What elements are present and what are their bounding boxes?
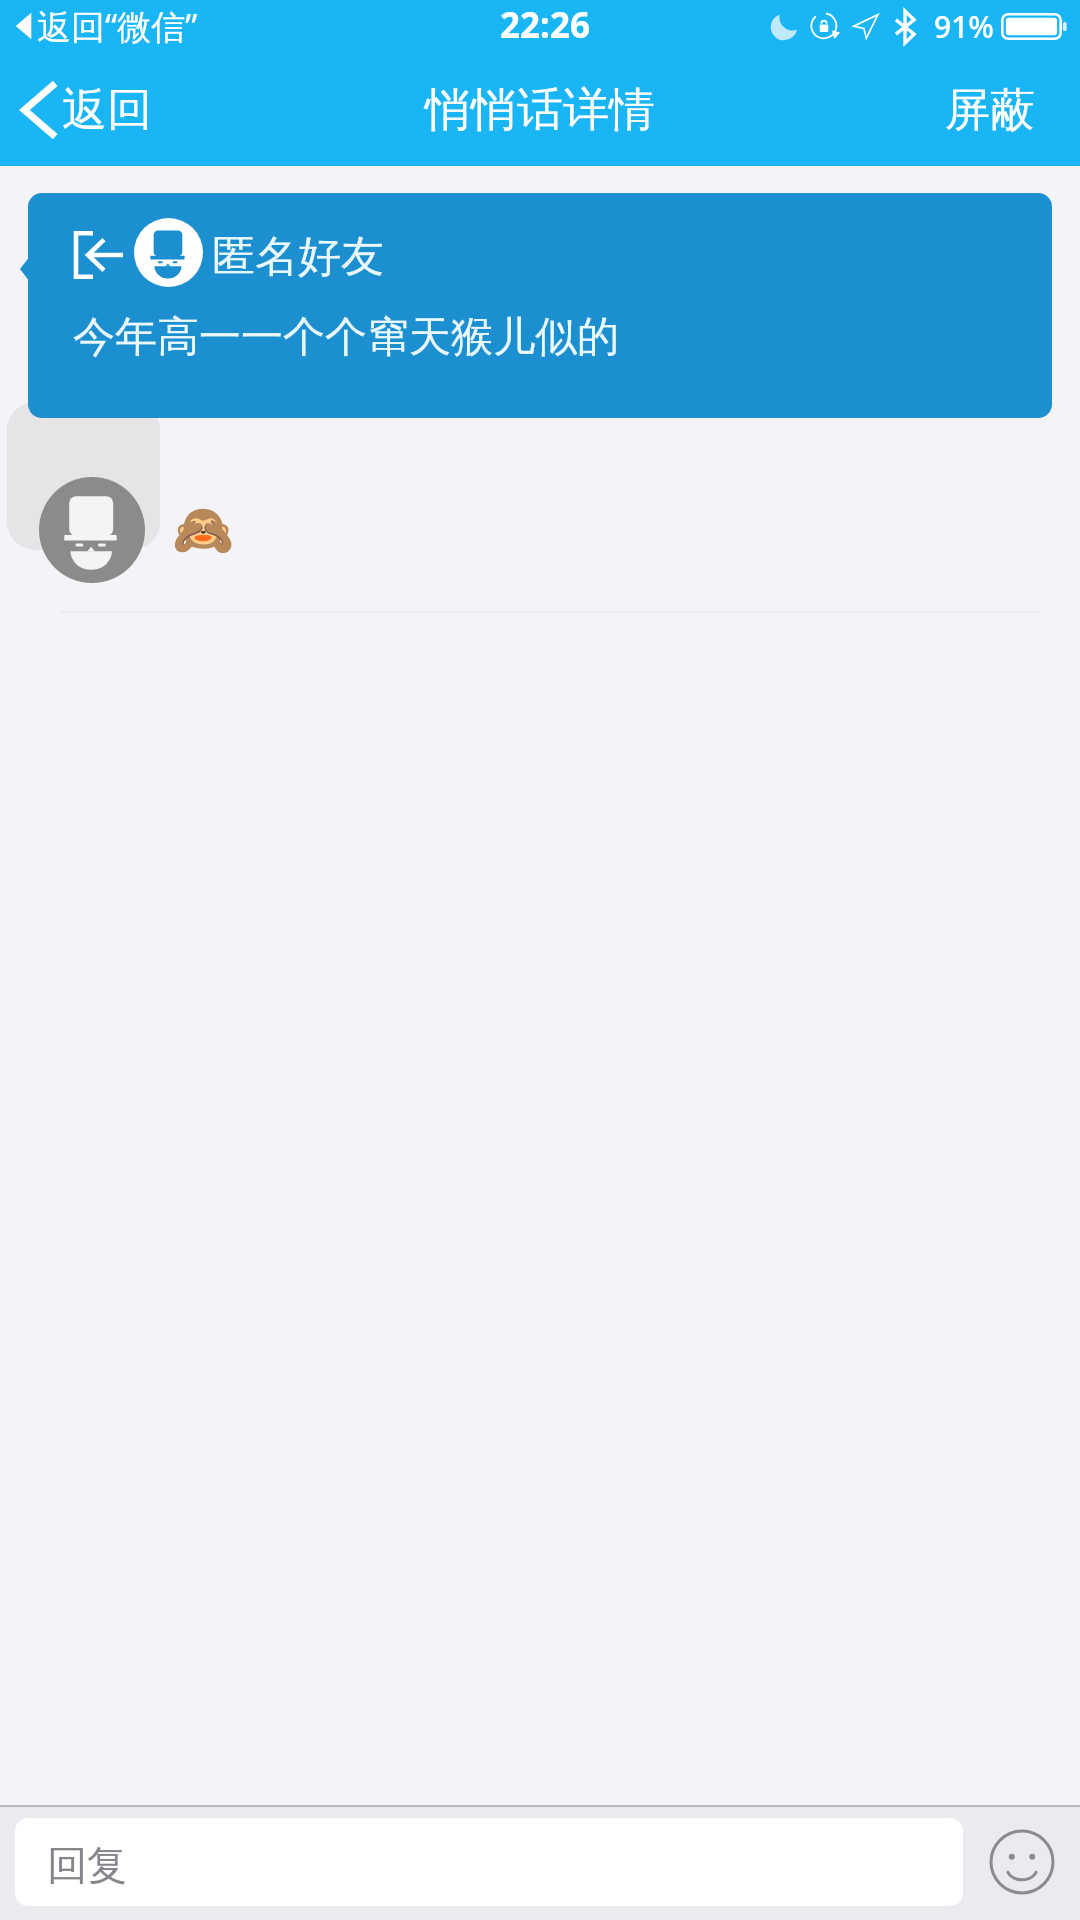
staticText: 🙈 [172, 501, 235, 560]
staticText: 返回 [62, 82, 152, 139]
staticText: 今年高一一个个窜天猴儿似的 [73, 311, 619, 364]
button[interactable]: 返回 [0, 65, 174, 155]
button[interactable]: Emoji [972, 1812, 1072, 1912]
staticText: 匿名好友 [212, 230, 384, 284]
staticText: 回复 [47, 1840, 127, 1890]
button[interactable]: 匿名好友 comment [39, 477, 235, 583]
button[interactable]: 屏蔽 [923, 66, 1080, 155]
button[interactable]: 回复 [15, 1818, 963, 1906]
staticText: 悄悄话详情 [425, 81, 655, 139]
staticText: 22:26 [500, 1, 590, 49]
staticText: 屏蔽 [945, 82, 1035, 139]
staticText: 91% [934, 6, 994, 47]
staticText: 返回“微信” [37, 3, 198, 49]
button[interactable]: 匿名好友 [28, 193, 1052, 418]
button[interactable]: 返回“微信” [0, 4, 206, 50]
